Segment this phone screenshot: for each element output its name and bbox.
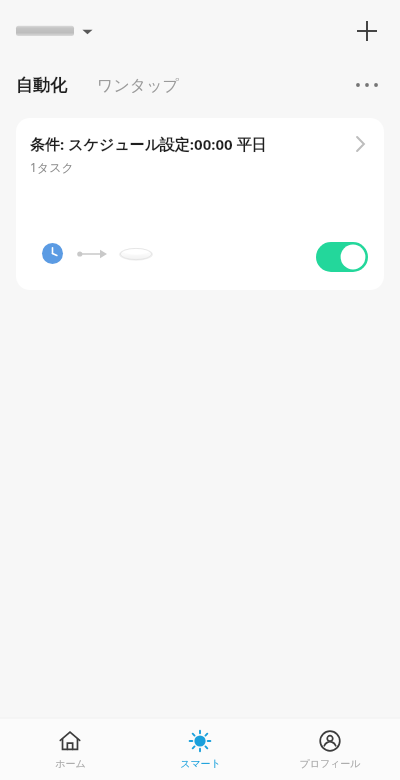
button[interactable]: Select home <box>14 18 95 44</box>
staticText: 条件: スケジュール設定:00:00 平日 <box>30 134 267 154</box>
button[interactable]: ワンタップ <box>95 72 181 100</box>
button[interactable]: More options <box>348 66 386 104</box>
button[interactable]: 条件: スケジュール設定:00:00 平日 <box>16 118 384 290</box>
button[interactable]: Open automation details <box>342 126 378 162</box>
staticText: ホーム <box>55 757 86 770</box>
button[interactable]: プロフィール <box>270 718 390 780</box>
staticText: プロフィール <box>299 757 361 770</box>
staticText: 自動化 <box>16 75 67 96</box>
button[interactable]: ホーム <box>10 718 130 780</box>
button[interactable]: 自動化 <box>16 71 71 100</box>
staticText: ワンタップ <box>97 76 179 96</box>
button[interactable]: スマート <box>140 718 260 780</box>
staticText: 1タスク <box>30 159 74 175</box>
button[interactable]: Add automation <box>348 12 386 50</box>
button[interactable]: Automation enabled <box>316 242 368 272</box>
staticText: スマート <box>180 757 221 770</box>
